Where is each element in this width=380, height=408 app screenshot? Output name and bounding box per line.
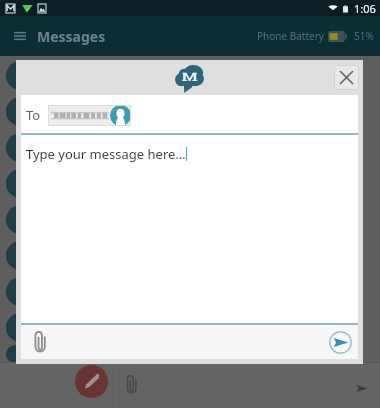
staticText: 1:06 — [354, 1, 376, 16]
staticText: 51% — [354, 29, 374, 43]
staticText: Messages — [37, 27, 106, 46]
button[interactable]: Compose new message — [75, 365, 108, 398]
button[interactable] — [0, 345, 380, 363]
button[interactable] — [0, 309, 380, 345]
button[interactable]: Attach file — [34, 330, 46, 354]
button[interactable] — [0, 57, 380, 93]
button[interactable] — [0, 237, 380, 273]
button[interactable]: Send message — [329, 331, 352, 354]
staticText: Type your message here... — [26, 145, 186, 163]
button[interactable]: Attach — [126, 374, 137, 395]
button[interactable] — [0, 129, 380, 165]
button[interactable]: Close — [334, 65, 359, 90]
button[interactable] — [0, 93, 380, 129]
button[interactable] — [0, 201, 380, 237]
button[interactable] — [48, 105, 131, 126]
button[interactable] — [0, 165, 380, 201]
staticText: To — [26, 106, 41, 124]
staticText: Phone Battery — [257, 29, 324, 43]
button[interactable]: Menu — [14, 30, 26, 42]
button[interactable]: Send — [355, 382, 369, 395]
button[interactable] — [0, 273, 380, 309]
